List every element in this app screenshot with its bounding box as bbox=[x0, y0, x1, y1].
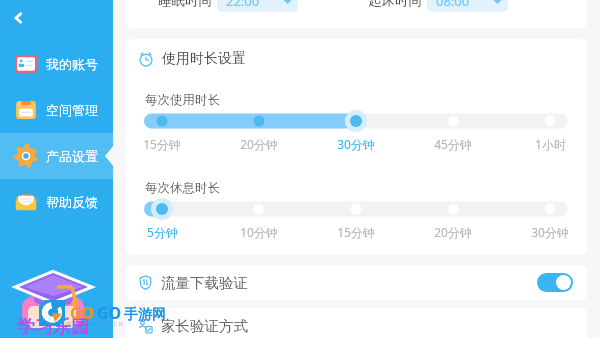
staticText: 10分钟 bbox=[240, 224, 278, 240]
button[interactable]: 流量下载验证 开关 bbox=[537, 273, 573, 292]
staticText: W W W . G O G O . C N bbox=[66, 320, 123, 327]
button[interactable]: 22:00 bbox=[217, 0, 298, 12]
staticText: 20分钟 bbox=[240, 136, 278, 152]
staticText: 手游网 bbox=[124, 306, 166, 324]
staticText: 每次使用时长 bbox=[145, 92, 220, 108]
staticText: 使用时长设置 bbox=[162, 50, 246, 68]
button[interactable]: 家长验证方式 bbox=[126, 308, 587, 338]
staticText: 5分钟 bbox=[147, 224, 178, 240]
staticText: 起床时间 bbox=[368, 0, 422, 9]
staticText: 30分钟 bbox=[531, 224, 569, 240]
staticText: 产品设置 bbox=[46, 148, 98, 164]
staticText: 流量下载验证 bbox=[161, 274, 248, 292]
staticText: 30分钟 bbox=[337, 136, 375, 152]
staticText: 08:00 bbox=[436, 0, 470, 10]
button[interactable]: Back bbox=[3, 2, 35, 34]
staticText: 我的账号 bbox=[46, 56, 98, 72]
staticText: GO bbox=[70, 302, 95, 324]
staticText: 20分钟 bbox=[434, 224, 472, 240]
button[interactable]: 流量下载验证 bbox=[126, 265, 587, 300]
staticText: 45分钟 bbox=[434, 136, 472, 152]
staticText: 家长验证方式 bbox=[161, 317, 248, 335]
staticText: 每次休息时长 bbox=[145, 180, 220, 196]
staticText: 1小时 bbox=[535, 136, 566, 152]
button[interactable]: 帮助反馈 bbox=[0, 179, 113, 225]
staticText: GO bbox=[97, 302, 122, 324]
staticText: 睡眠时间 bbox=[158, 0, 212, 9]
staticText: 22:00 bbox=[226, 0, 260, 10]
staticText: 15分钟 bbox=[143, 136, 181, 152]
staticText: 学习乐园 bbox=[17, 316, 89, 338]
button[interactable]: 08:00 bbox=[427, 0, 508, 12]
button[interactable]: 空间管理 bbox=[0, 87, 113, 133]
button[interactable]: 我的账号 bbox=[0, 41, 113, 87]
staticText: 空间管理 bbox=[46, 102, 98, 118]
button[interactable]: 产品设置 bbox=[0, 133, 113, 179]
staticText: 帮助反馈 bbox=[46, 194, 98, 210]
staticText: 15分钟 bbox=[337, 224, 375, 240]
